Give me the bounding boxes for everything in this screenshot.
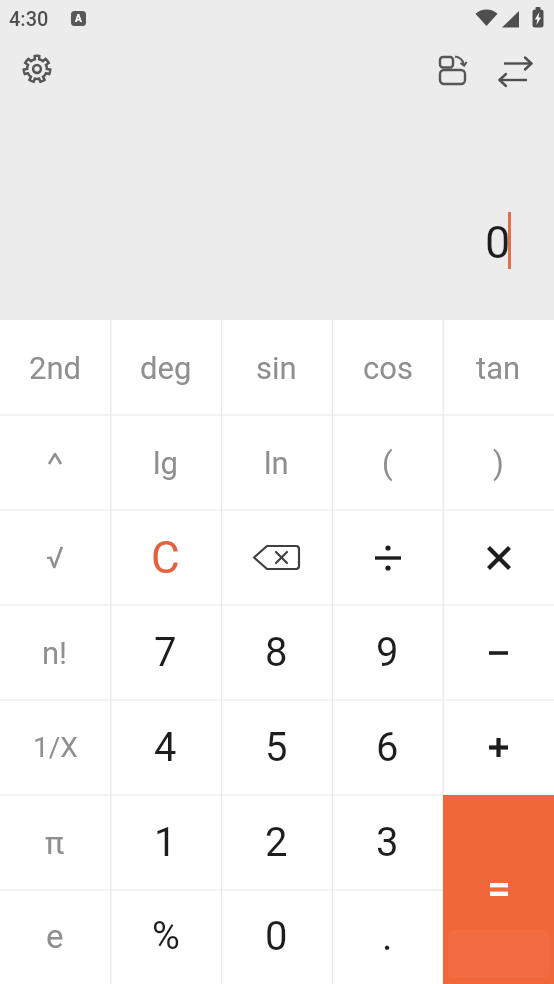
staticText: cos (363, 350, 413, 386)
staticText: 9 (376, 629, 399, 676)
staticText: A (75, 13, 82, 25)
staticText: ) (493, 445, 504, 481)
button[interactable]: ) (443, 415, 554, 510)
staticText: lg (153, 445, 178, 481)
button[interactable]: 6 (332, 700, 443, 795)
staticText: 3 (376, 819, 399, 866)
staticText: tan (476, 350, 521, 386)
button[interactable]: C (110, 510, 221, 605)
staticText: % (152, 914, 180, 959)
staticText: 2 (265, 819, 288, 866)
staticText: 8 (265, 629, 288, 676)
button[interactable] (434, 52, 470, 88)
button[interactable]: 2nd (0, 320, 110, 415)
staticText: sin (256, 350, 297, 386)
button[interactable]: π (0, 795, 110, 890)
button[interactable]: 8 (221, 605, 332, 700)
button[interactable]: 1/X (0, 700, 110, 795)
button[interactable]: 1 (110, 795, 221, 890)
staticText: n! (42, 635, 68, 671)
button[interactable]: lg (110, 415, 221, 510)
staticText: 0 (265, 913, 288, 960)
button[interactable]: deg (110, 320, 221, 415)
button[interactable]: 3 (332, 795, 443, 890)
button[interactable] (443, 605, 554, 700)
staticText: 0 (485, 216, 511, 269)
staticText: ln (264, 445, 289, 481)
button[interactable] (443, 700, 554, 795)
staticText: C (151, 532, 180, 584)
button[interactable] (332, 510, 443, 605)
staticText: √ (46, 540, 64, 575)
button[interactable]: 2 (221, 795, 332, 890)
button[interactable]: 4 (110, 700, 221, 795)
button[interactable]: 7 (110, 605, 221, 700)
button[interactable]: e (0, 890, 110, 983)
staticText: 7 (154, 629, 177, 676)
staticText: e (46, 917, 64, 956)
staticText: 1/X (33, 731, 78, 764)
button[interactable]: √ (0, 510, 110, 605)
staticText: deg (140, 350, 192, 386)
staticText: ( (382, 445, 393, 481)
button[interactable] (221, 510, 332, 605)
staticText: 2nd (29, 350, 82, 386)
staticText: 5 (265, 724, 288, 771)
button[interactable]: . (332, 890, 443, 983)
button[interactable] (495, 54, 537, 88)
button[interactable]: 9 (332, 605, 443, 700)
button[interactable] (0, 415, 110, 510)
button[interactable]: tan (443, 320, 554, 415)
button[interactable]: ln (221, 415, 332, 510)
staticText: 4 (154, 724, 177, 771)
button[interactable]: % (110, 890, 221, 983)
button[interactable]: 5 (221, 700, 332, 795)
staticText: 1 (154, 819, 177, 866)
button[interactable]: 0 (221, 890, 332, 983)
button[interactable] (21, 53, 53, 85)
button[interactable] (443, 890, 554, 983)
button[interactable] (443, 510, 554, 605)
button[interactable] (443, 795, 554, 984)
button[interactable]: n! (0, 605, 110, 700)
staticText: 6 (376, 724, 399, 771)
staticText: . (382, 913, 393, 960)
staticText: 4:30 (9, 7, 49, 30)
button[interactable]: ( (332, 415, 443, 510)
button[interactable] (443, 795, 554, 890)
button[interactable]: cos (332, 320, 443, 415)
button[interactable]: sin (221, 320, 332, 415)
staticText: π (45, 824, 65, 862)
